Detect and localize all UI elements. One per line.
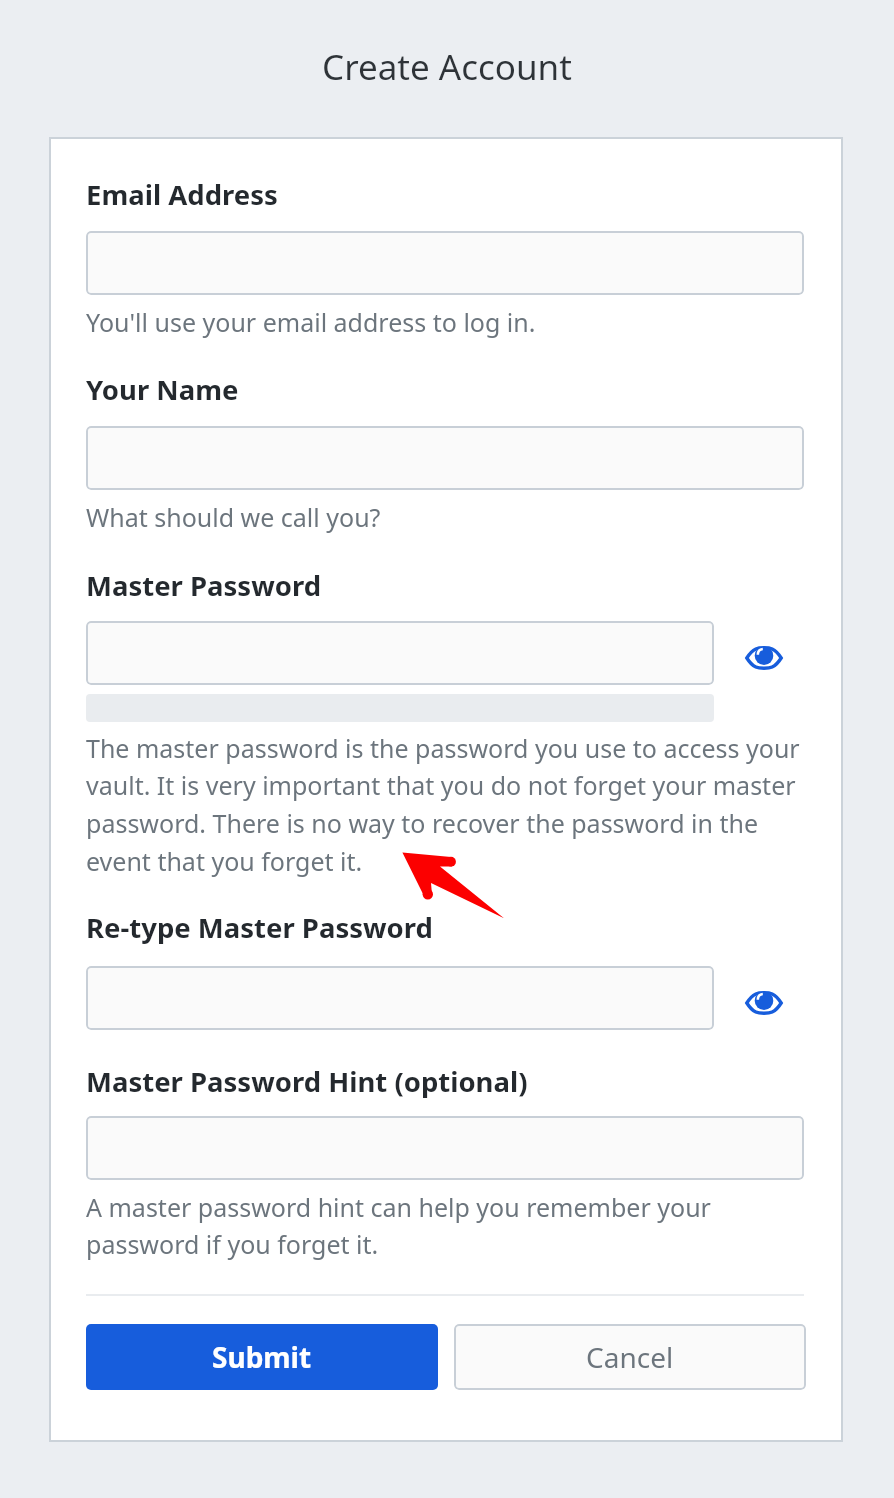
- staticText: You'll use your email address to log in.: [86, 305, 808, 339]
- button[interactable]: Master Password Hint: [86, 1116, 804, 1180]
- button[interactable]: Email Address: [86, 231, 804, 295]
- staticText: Master Password Hint (optional): [86, 1063, 528, 1100]
- button[interactable]: Re-type Master Password: [86, 966, 714, 1030]
- button[interactable]: Submit: [86, 1324, 438, 1390]
- button[interactable]: Your Name: [86, 426, 804, 490]
- staticText: Re-type Master Password: [86, 909, 433, 946]
- staticText: Submit: [212, 1338, 312, 1376]
- button[interactable]: Toggle master password visibility: [736, 630, 792, 686]
- staticText: A master password hint can help you reme…: [86, 1190, 808, 1262]
- button[interactable]: Master Password: [86, 621, 714, 685]
- staticText: Master Password: [86, 567, 322, 604]
- staticText: What should we call you?: [86, 500, 808, 534]
- staticText: Create Account: [0, 43, 894, 91]
- button[interactable]: Toggle re-typed master password visibili…: [736, 975, 792, 1031]
- staticText: Cancel: [586, 1338, 674, 1376]
- staticText: Email Address: [86, 176, 278, 213]
- staticText: Your Name: [86, 371, 239, 408]
- staticText: The master password is the password you …: [86, 731, 808, 879]
- button[interactable]: Cancel: [454, 1324, 806, 1390]
